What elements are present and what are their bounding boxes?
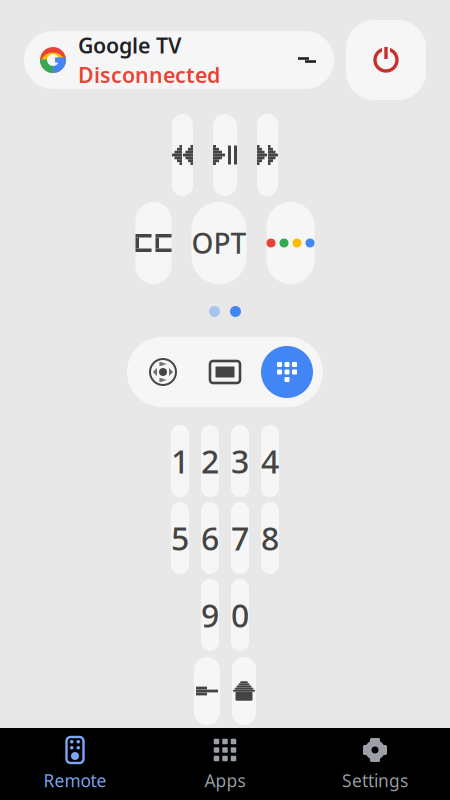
button[interactable]: Power <box>346 20 426 100</box>
staticText: Remote <box>43 769 106 792</box>
staticText: Settings <box>342 769 408 792</box>
button[interactable]: Home <box>232 657 256 725</box>
staticText: 2 <box>201 440 219 482</box>
staticText: 4 <box>261 440 279 482</box>
button[interactable]: 1 <box>171 425 189 497</box>
button[interactable]: 8 <box>261 502 279 574</box>
button[interactable]: 0 <box>231 579 249 651</box>
staticText: 3 <box>231 440 249 482</box>
button[interactable]: Settings <box>300 728 450 800</box>
button[interactable]: Screen <box>197 345 253 399</box>
button[interactable]: Google TV <box>24 31 334 89</box>
staticText: 8 <box>261 517 279 559</box>
button[interactable] <box>191 202 246 284</box>
staticText: Disconnected <box>78 60 220 89</box>
button[interactable]: 6 <box>201 502 219 574</box>
button[interactable]: Colour buttons <box>266 202 314 284</box>
staticText: Google TV <box>78 31 181 59</box>
button[interactable]: Back <box>194 657 220 725</box>
staticText: Apps <box>204 769 245 792</box>
staticText: 1 <box>171 440 189 482</box>
staticText: 6 <box>201 517 219 559</box>
button[interactable]: D-pad <box>135 345 191 399</box>
button[interactable]: Fast forward <box>257 114 278 196</box>
button[interactable]: 3 <box>231 425 249 497</box>
staticText: 0 <box>231 594 249 636</box>
staticText: OPT <box>191 224 246 262</box>
staticText: 7 <box>231 517 249 559</box>
button[interactable]: 9 <box>201 579 219 651</box>
button[interactable]: 5 <box>171 502 189 574</box>
button[interactable]: Closed captions <box>135 202 171 284</box>
staticText: 9 <box>201 594 219 636</box>
button[interactable]: Number pad <box>259 345 315 399</box>
button[interactable]: Rewind <box>172 114 193 196</box>
button[interactable]: Apps <box>150 728 300 800</box>
button[interactable]: 4 <box>261 425 279 497</box>
button[interactable]: 2 <box>201 425 219 497</box>
button[interactable]: Play or pause <box>213 114 237 196</box>
staticText: 5 <box>171 517 189 559</box>
button[interactable]: Remote <box>0 728 150 800</box>
button[interactable]: 7 <box>231 502 249 574</box>
